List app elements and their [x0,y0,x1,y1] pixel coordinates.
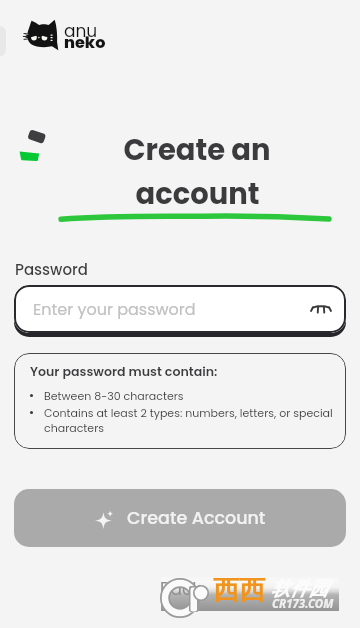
staticText: Enter your password [33,298,196,320]
staticText: account [135,174,260,215]
staticText: Create Account [127,506,266,531]
staticText: neko [64,31,106,53]
staticText: 软件园 [271,577,328,601]
staticText: anu [64,19,98,43]
staticText: CR173.COM [272,596,334,612]
button[interactable]: Show password [308,296,334,322]
staticText: 西西 [213,574,265,607]
staticText: Your password must contain: [30,363,218,381]
button[interactable]: anu neko [22,17,114,55]
staticText: Password [15,259,88,280]
button[interactable]: Back [154,571,207,607]
staticText: Contains at least 2 types: numbers, lett… [44,405,336,436]
button[interactable]: Enter your password [14,285,346,333]
staticText: Create an [123,130,271,171]
staticText: Between 8-30 characters [44,388,184,403]
button[interactable]: Create Account [14,489,346,547]
